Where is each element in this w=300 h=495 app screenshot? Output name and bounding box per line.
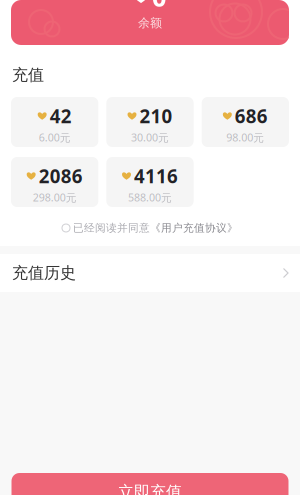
staticText: 4116	[134, 163, 178, 188]
staticText: 《用户充值协议》	[150, 221, 238, 234]
button[interactable]: 充值历史	[0, 254, 300, 292]
staticText: 余额	[138, 16, 162, 30]
button[interactable]: 已经阅读并同意	[0, 221, 300, 235]
staticText: 0	[152, 0, 166, 14]
staticText: 210	[139, 103, 172, 128]
staticText: 98.00元	[226, 130, 264, 144]
staticText: 2086	[39, 163, 83, 188]
button[interactable]: 立即充值	[11, 473, 288, 495]
button[interactable]: 210	[106, 97, 194, 147]
button[interactable]: 2086	[11, 157, 98, 207]
button[interactable]: 686	[202, 97, 289, 147]
staticText: 立即充值	[118, 482, 182, 495]
staticText: 298.00元	[33, 190, 77, 204]
button[interactable]: 4116	[106, 157, 194, 207]
button[interactable]: 42	[11, 97, 98, 147]
staticText: 42	[50, 103, 72, 128]
staticText: 686	[235, 103, 268, 128]
staticText: 充值历史	[12, 263, 76, 283]
staticText: 已经阅读并同意	[70, 221, 150, 234]
staticText: 588.00元	[128, 190, 172, 204]
staticText: 充值	[12, 65, 44, 85]
staticText: 6.00元	[39, 130, 71, 144]
staticText: 30.00元	[131, 130, 169, 144]
